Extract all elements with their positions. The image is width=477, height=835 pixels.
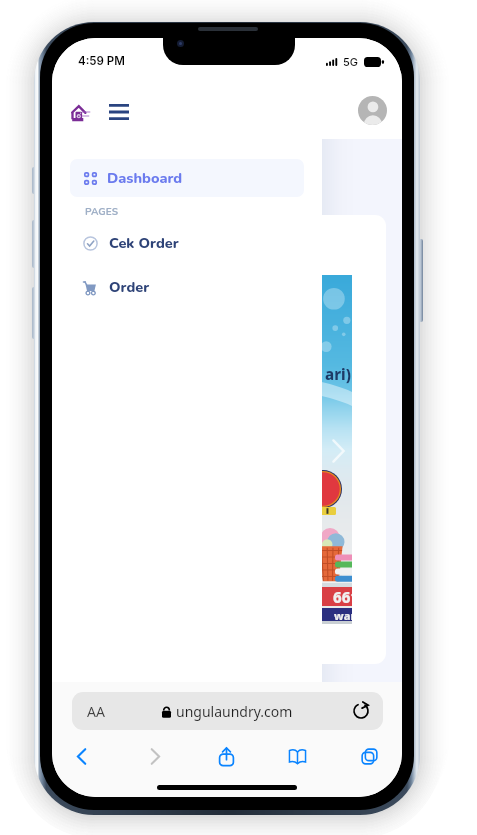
staticText: AA (87, 702, 105, 721)
staticText: wang (334, 608, 352, 621)
staticText: PAGES (85, 205, 119, 219)
staticText: 6618 (333, 587, 352, 606)
staticText: 5G (343, 55, 359, 68)
staticText: Order (109, 277, 150, 297)
button[interactable]: AA (72, 692, 383, 730)
staticText: Dashboard (107, 168, 183, 188)
button[interactable]: Menu (104, 97, 134, 127)
button[interactable]: Back (63, 737, 101, 775)
button[interactable]: Tabs (350, 737, 388, 775)
button[interactable]: Reload (352, 702, 370, 720)
button[interactable]: Cek Order (52, 228, 322, 258)
staticText: ari) (325, 364, 351, 384)
staticText: 4:59 PM (78, 54, 125, 68)
button[interactable]: Forward (135, 737, 173, 775)
button[interactable]: Profile (358, 96, 387, 125)
button[interactable]: Order (52, 272, 322, 302)
button[interactable]: Dashboard (70, 159, 304, 197)
button[interactable]: Share (207, 737, 245, 775)
staticText: Cek Order (109, 233, 179, 253)
button[interactable]: Bookmarks (278, 737, 316, 775)
staticText: ungulaundry.com (176, 702, 293, 721)
button[interactable]: Home (64, 96, 94, 126)
